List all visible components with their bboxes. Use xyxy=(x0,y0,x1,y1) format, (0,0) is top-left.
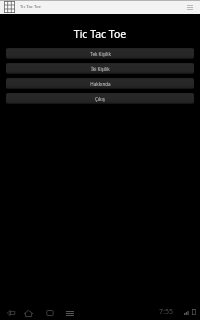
button[interactable]: Recent apps xyxy=(43,308,56,318)
button[interactable]: More options xyxy=(184,1,196,13)
staticText: Çıkış xyxy=(95,96,105,102)
button[interactable]: Tek Kişilik xyxy=(6,48,194,59)
staticText: Tic Tac Toe xyxy=(0,27,200,41)
staticText: Hakkında xyxy=(90,81,111,87)
staticText: Tek Kişilik xyxy=(90,51,111,57)
button[interactable]: Menu xyxy=(63,308,76,318)
button[interactable]: İki Kişilik xyxy=(6,63,194,74)
button[interactable]: Home xyxy=(22,308,35,318)
button[interactable]: Hakkında xyxy=(6,78,194,89)
button[interactable]: Çıkış xyxy=(6,93,194,104)
staticText: Tic Tac Toe xyxy=(20,4,41,10)
staticText: 7:55 xyxy=(159,307,173,317)
button[interactable]: Back xyxy=(4,308,17,318)
staticText: İki Kişilik xyxy=(91,66,110,72)
